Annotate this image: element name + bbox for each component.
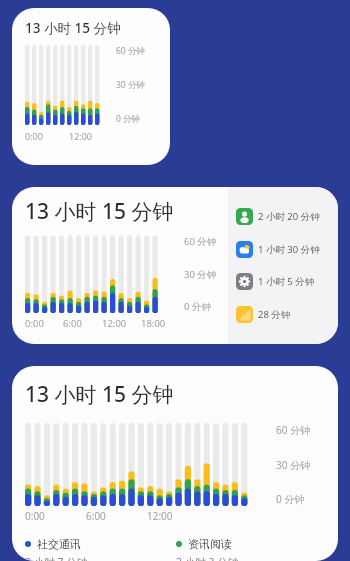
staticText: 12:00 xyxy=(147,509,173,523)
button[interactable]: 13 小时 15 分钟 xyxy=(12,8,170,165)
staticText: 13 小时 15 分钟 xyxy=(25,197,174,226)
staticText: 0:00 xyxy=(25,317,44,330)
staticText: 13 小时 15 分钟 xyxy=(25,380,174,409)
button[interactable]: settings xyxy=(236,273,338,290)
staticText: 3 小时 7 分钟 xyxy=(25,555,88,561)
staticText: 2 小时 20 分钟 xyxy=(258,210,320,223)
staticText: 12:00 xyxy=(69,130,93,142)
staticText: 社交通讯 xyxy=(37,537,81,551)
staticText: 28 分钟 xyxy=(258,308,291,321)
staticText: 1 小时 30 分钟 xyxy=(258,243,320,256)
button[interactable]: weather xyxy=(236,241,338,258)
other: settings xyxy=(236,273,253,290)
staticText: 60 分钟 xyxy=(184,235,217,248)
staticText: 2 小时 3 分钟 xyxy=(176,555,239,561)
staticText: 60 分钟 xyxy=(116,45,145,57)
other: notes xyxy=(236,306,253,323)
button[interactable]: 13 小时 15 分钟 xyxy=(12,187,338,344)
staticText: 6:00 xyxy=(63,317,82,330)
staticText: 13 小时 15 分钟 xyxy=(25,19,121,37)
button[interactable]: contacts xyxy=(236,208,338,225)
staticText: 0 分钟 xyxy=(116,113,141,125)
staticText: 0:00 xyxy=(25,130,43,142)
button[interactable]: 13 小时 15 分钟 xyxy=(12,366,338,561)
button[interactable]: notes xyxy=(236,306,338,323)
button[interactable]: 社交通讯 xyxy=(25,537,176,561)
staticText: 1 小时 5 分钟 xyxy=(258,275,315,288)
staticText: 30 分钟 xyxy=(184,268,217,281)
staticText: 60 分钟 xyxy=(276,423,311,437)
staticText: 6:00 xyxy=(86,509,106,523)
staticText: 12:00 xyxy=(102,317,127,330)
other: contacts xyxy=(236,208,253,225)
staticText: 30 分钟 xyxy=(276,458,311,472)
button[interactable]: 资讯阅读 xyxy=(176,537,328,561)
staticText: 资讯阅读 xyxy=(188,537,232,551)
other: weather xyxy=(236,241,253,258)
staticText: 0 分钟 xyxy=(184,300,211,313)
staticText: 18:00 xyxy=(141,317,166,330)
staticText: 0:00 xyxy=(25,509,45,523)
staticText: 30 分钟 xyxy=(116,79,145,91)
staticText: 0 分钟 xyxy=(276,492,305,506)
